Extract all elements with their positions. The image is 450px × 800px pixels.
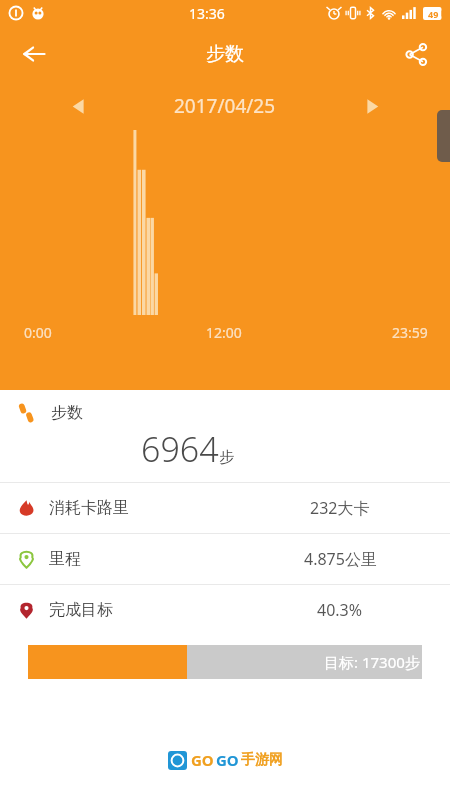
staticText: 13:36 [189,4,225,23]
button[interactable]: 消耗卡路里 [0,483,450,533]
staticText: 40.3% [317,599,363,621]
staticText: 步数 [51,403,83,423]
staticText: 完成目标 [49,600,113,620]
staticText: GO [216,750,239,770]
staticText: 6964 [141,426,219,472]
staticText: 0:00 [24,323,52,342]
staticText: GO [191,750,214,770]
button[interactable]: 完成目标 [0,585,450,635]
staticText: 232大卡 [310,497,370,519]
button[interactable]: Share [394,32,438,76]
button[interactable]: Back [12,32,56,76]
button[interactable]: 目标: 17300步 [28,645,422,679]
button[interactable]: Previous day [60,88,96,124]
button[interactable]: 里程 [0,534,450,584]
staticText: 12:00 [206,323,242,342]
staticText: 消耗卡路里 [49,498,129,518]
staticText: 目标: 17300步 [324,652,420,672]
staticText: 49 [428,8,439,20]
staticText: 里程 [49,549,81,569]
staticText: 4.875公里 [304,548,377,570]
button[interactable]: 步数 [0,390,450,482]
staticText: 步数 [206,42,244,66]
staticText: 手游网 [241,751,283,769]
staticText: 23:59 [392,323,428,342]
button[interactable]: Next day [354,88,390,124]
staticText: 2017/04/25 [174,93,276,119]
staticText: 步 [219,448,234,467]
